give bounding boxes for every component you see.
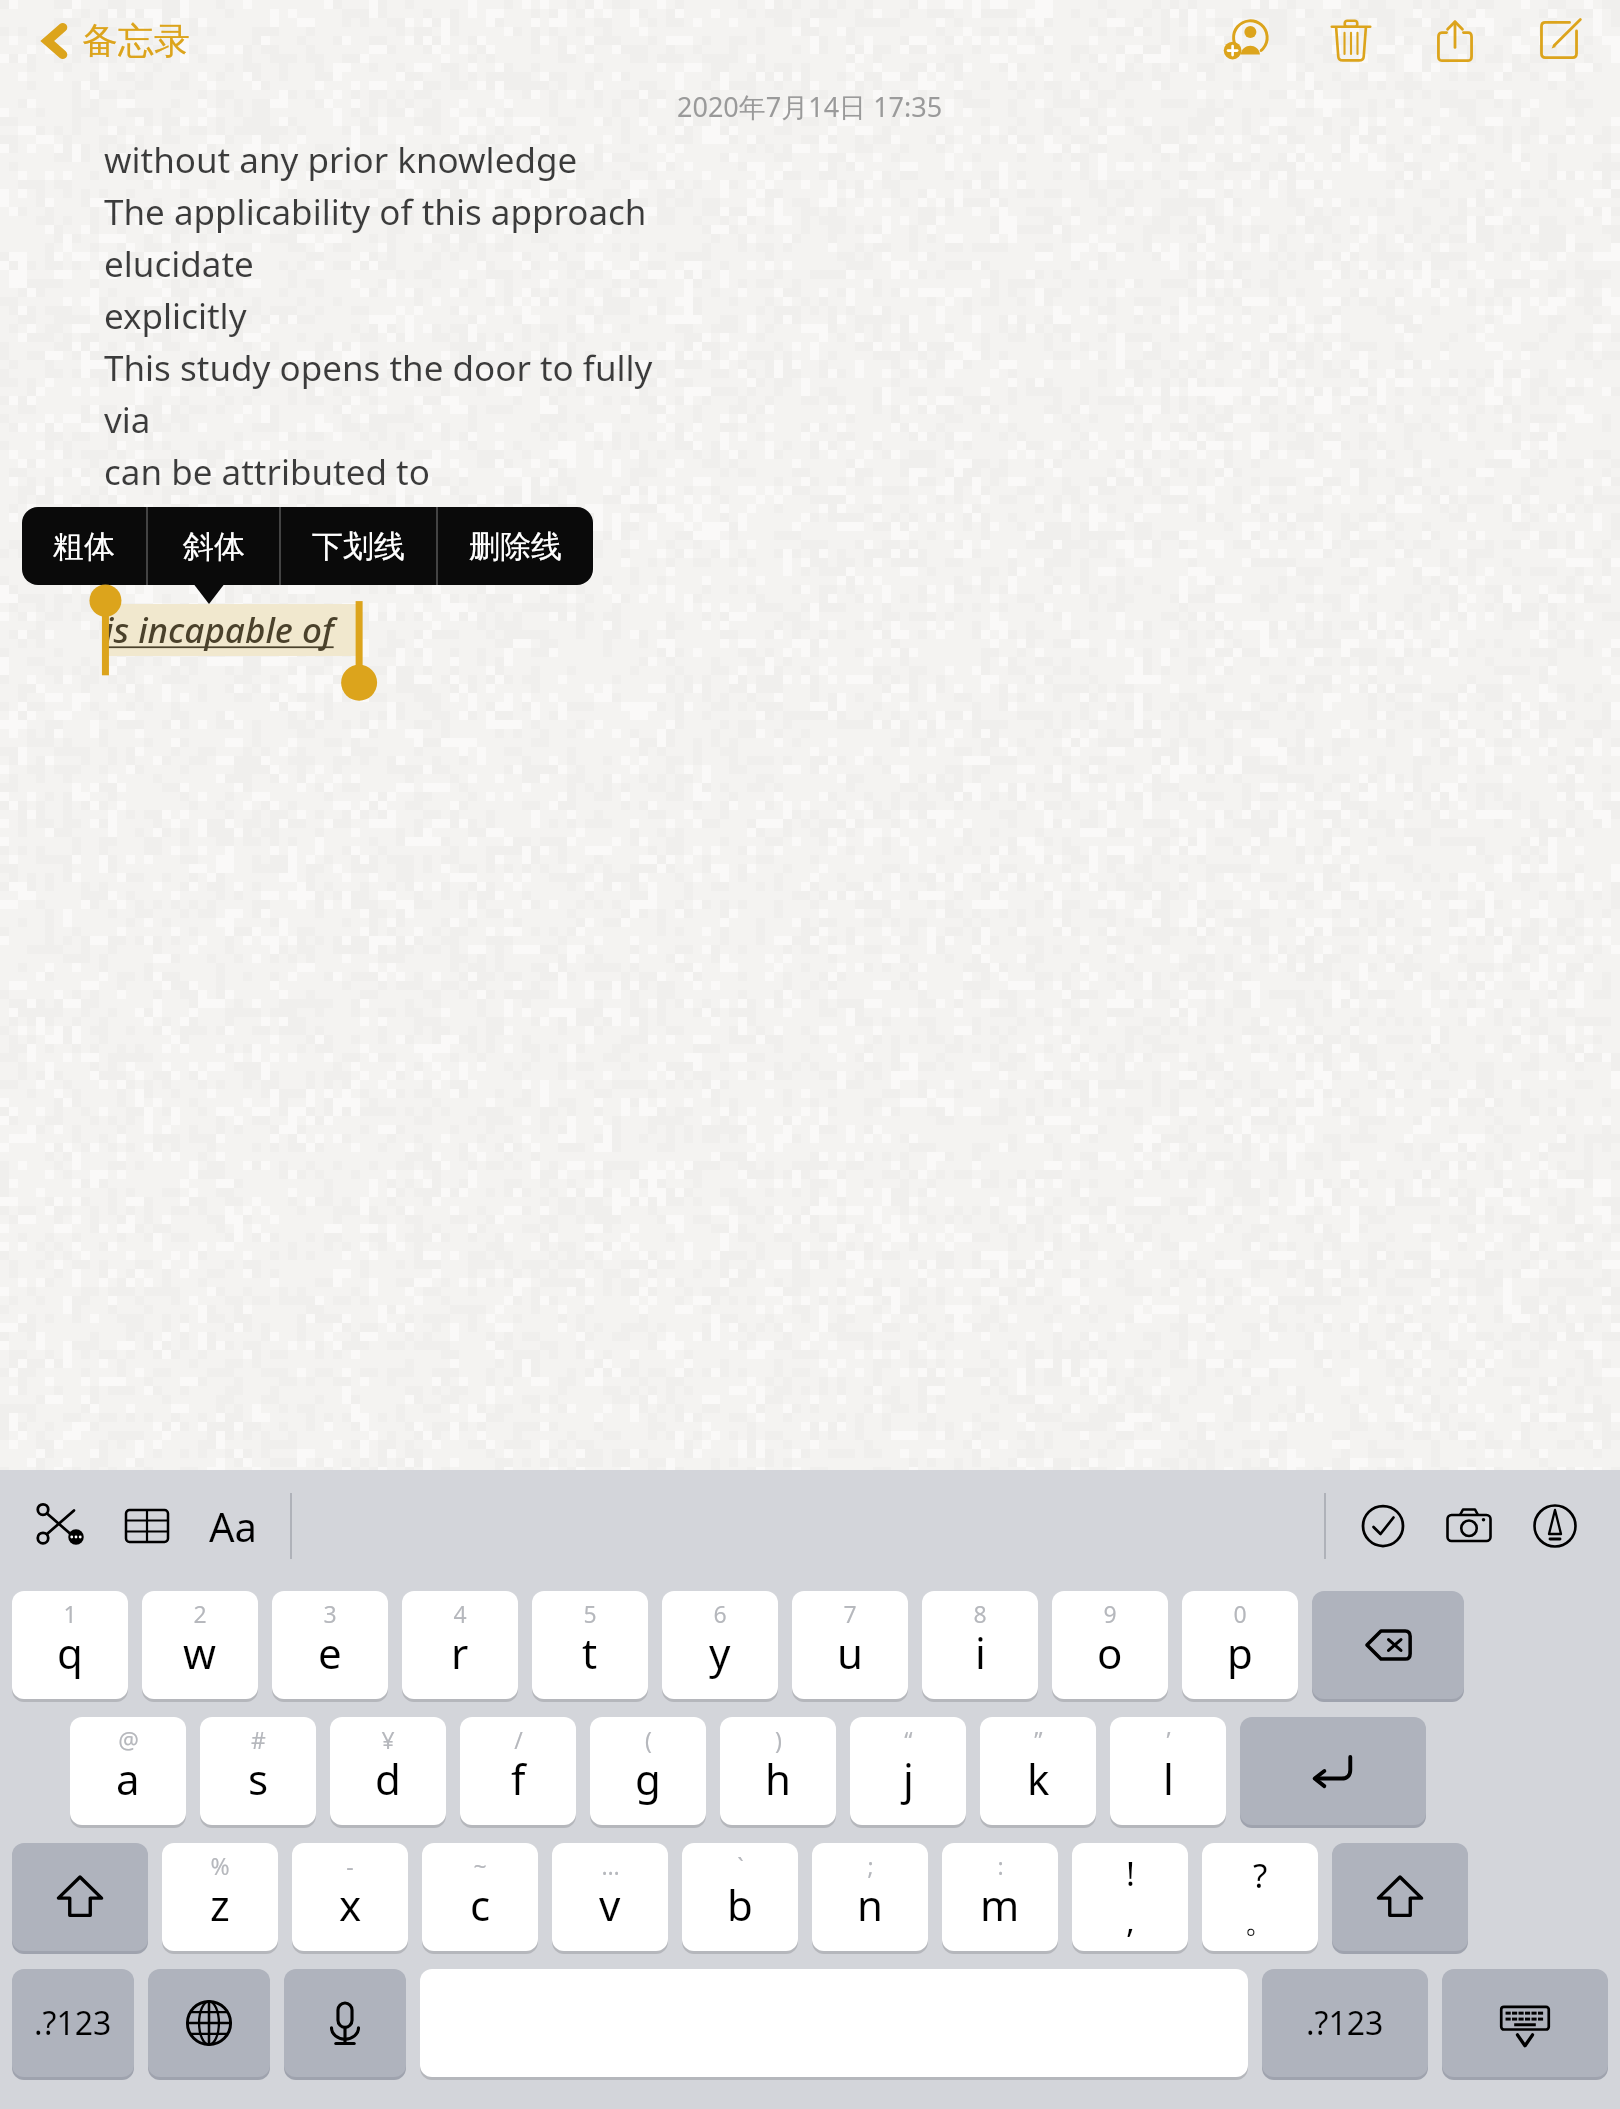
button[interactable]: “ (850, 1717, 966, 1825)
button[interactable]: Backspace (1312, 1591, 1464, 1699)
button[interactable]: Switch language (148, 1969, 270, 2077)
button[interactable]: ) (720, 1717, 836, 1825)
staticText: 3 (323, 1598, 337, 1629)
staticText: s (248, 1750, 269, 1807)
button[interactable]: 5 (532, 1591, 648, 1699)
staticText: q (57, 1624, 83, 1681)
button[interactable]: Shift (12, 1843, 148, 1951)
button[interactable]: 4 (402, 1591, 518, 1699)
staticText: 9 (1103, 1598, 1117, 1629)
button[interactable]: - (292, 1843, 408, 1951)
button[interactable]: ~ (422, 1843, 538, 1951)
staticText: m (980, 1876, 1020, 1933)
staticText: without any prior knowledge (104, 136, 578, 184)
button[interactable]: Checklist (1348, 1491, 1418, 1561)
staticText: via (104, 396, 151, 444)
staticText: % (210, 1850, 230, 1881)
staticText: elucidate (104, 240, 254, 288)
staticText: 粗体 (53, 527, 115, 566)
staticText: 6 (713, 1598, 727, 1629)
staticText: n (857, 1876, 883, 1933)
staticText: 备忘录 (82, 18, 190, 63)
button[interactable]: 2 (142, 1591, 258, 1699)
staticText: 7 (843, 1598, 857, 1629)
button[interactable]: … (552, 1843, 668, 1951)
staticText: Simply put, (104, 500, 288, 548)
staticText: # (251, 1724, 266, 1755)
button[interactable]: Delete (1322, 11, 1380, 69)
button[interactable]: 9 (1052, 1591, 1168, 1699)
button[interactable]: 8 (922, 1591, 1038, 1699)
button[interactable]: 粗体 (22, 507, 146, 585)
button[interactable]: 删除线 (438, 507, 593, 585)
button[interactable]: 7 (792, 1591, 908, 1699)
button[interactable]: / (460, 1717, 576, 1825)
staticText: 4 (453, 1598, 467, 1629)
staticText: 2020年7月14日 17:35 (677, 88, 943, 125)
button[interactable]: Hide keyboard (1442, 1969, 1608, 2077)
staticText: “ (904, 1724, 913, 1755)
button[interactable]: 6 (662, 1591, 778, 1699)
staticText: z (210, 1876, 230, 1933)
button[interactable]: 1 (12, 1591, 128, 1699)
button[interactable]: ; (812, 1843, 928, 1951)
staticText: b (727, 1876, 753, 1933)
button[interactable]: ’ (1110, 1717, 1226, 1825)
button[interactable]: 备忘录 (34, 12, 198, 69)
button[interactable]: Aa (198, 1491, 268, 1561)
button[interactable]: Share (1426, 11, 1484, 69)
button[interactable]: 3 (272, 1591, 388, 1699)
staticText: ” (1034, 1724, 1043, 1755)
button[interactable]: Cut (26, 1491, 96, 1561)
button[interactable]: ” (980, 1717, 1096, 1825)
button[interactable]: Compose (1530, 11, 1588, 69)
staticText: 5 (583, 1598, 597, 1629)
button[interactable]: ? (1202, 1843, 1318, 1951)
staticText: k (1027, 1750, 1050, 1807)
button[interactable]: Shift (1332, 1843, 1468, 1951)
staticText: / (514, 1724, 523, 1755)
staticText: is incapable of (104, 606, 334, 654)
button[interactable]: ¥ (330, 1717, 446, 1825)
staticText: .?123 (34, 2001, 112, 2045)
button[interactable]: @ (70, 1717, 186, 1825)
button[interactable]: ( (590, 1717, 706, 1825)
staticText: 1 (63, 1598, 77, 1629)
staticText: c (470, 1876, 491, 1933)
staticText: p (1227, 1624, 1253, 1681)
button[interactable]: Dictate (284, 1969, 406, 2077)
staticText: @ (118, 1724, 139, 1755)
button[interactable]: .?123 (12, 1969, 134, 2077)
button[interactable]: .?123 (1262, 1969, 1428, 2077)
button[interactable]: Markup (1520, 1491, 1590, 1561)
staticText: ¥ (381, 1724, 395, 1755)
button[interactable]: 下划线 (281, 507, 436, 585)
button[interactable]: ! (1072, 1843, 1188, 1951)
button[interactable]: : (942, 1843, 1058, 1951)
button[interactable]: Camera (1434, 1491, 1504, 1561)
staticText: x (339, 1876, 362, 1933)
staticText: 8 (973, 1598, 987, 1629)
button[interactable]: 0 (1182, 1591, 1298, 1699)
button[interactable]: Table (112, 1491, 182, 1561)
staticText: ’ (1166, 1724, 1171, 1755)
button[interactable]: Return (1240, 1717, 1426, 1825)
staticText: u (837, 1624, 863, 1681)
staticText: i (975, 1624, 986, 1681)
button[interactable]: % (162, 1843, 278, 1951)
staticText: … (601, 1850, 620, 1881)
staticText: ` (737, 1850, 744, 1881)
staticText: ( (645, 1724, 652, 1755)
staticText: h (765, 1750, 791, 1807)
button[interactable]: 斜体 (148, 507, 279, 585)
staticText: .?123 (1306, 2001, 1384, 2045)
staticText: r (451, 1624, 469, 1681)
staticText: This study opens the door to fully (104, 344, 653, 392)
button[interactable]: Add people (1218, 11, 1276, 69)
staticText: y (709, 1624, 731, 1681)
button[interactable]: # (200, 1717, 316, 1825)
button[interactable]: ` (682, 1843, 798, 1951)
staticText: - (346, 1850, 354, 1881)
staticText: g (635, 1750, 661, 1807)
